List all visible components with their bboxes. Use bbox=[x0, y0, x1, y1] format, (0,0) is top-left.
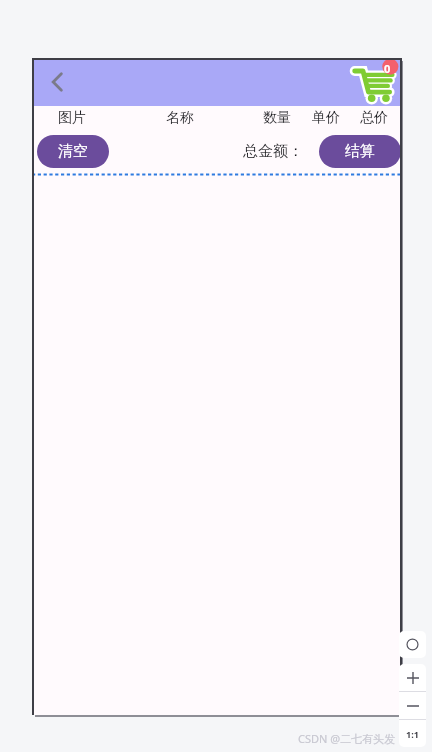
staticText: 图片 bbox=[54, 109, 90, 127]
staticText: 数量 bbox=[259, 109, 295, 127]
staticText: 0 bbox=[384, 61, 391, 76]
button[interactable]: Zoom in bbox=[399, 664, 426, 691]
staticText: 名称 bbox=[162, 109, 198, 127]
staticText: 1:1 bbox=[406, 728, 419, 740]
button[interactable]: Zoom out bbox=[399, 692, 426, 719]
staticText: 总价 bbox=[356, 109, 392, 127]
button[interactable]: 结算 bbox=[319, 135, 401, 168]
staticText: 清空 bbox=[58, 142, 88, 161]
button[interactable]: Back bbox=[38, 62, 78, 102]
button[interactable]: 清空 bbox=[37, 135, 109, 168]
staticText: CSDN @二七有头发 bbox=[298, 731, 396, 746]
staticText: 单价 bbox=[308, 109, 344, 127]
staticText: 结算 bbox=[345, 142, 375, 161]
button[interactable]: Pan tool bbox=[399, 631, 426, 658]
button[interactable]: Shopping cart, 0 items bbox=[351, 59, 397, 105]
button[interactable]: Actual size bbox=[399, 720, 426, 747]
staticText: 总金额： bbox=[243, 142, 303, 161]
